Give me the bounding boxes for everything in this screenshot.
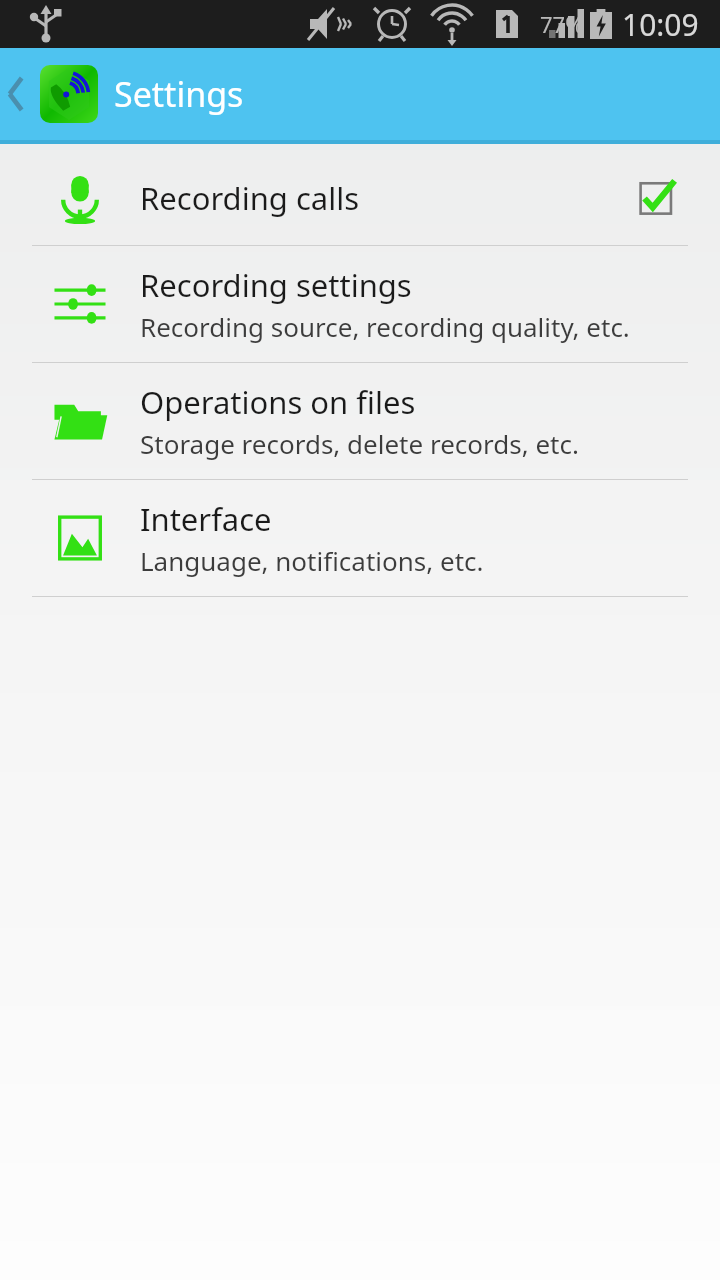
staticText: Operations on files — [140, 381, 416, 423]
staticText: Recording settings — [140, 264, 412, 306]
staticText: Interface — [140, 498, 272, 540]
button[interactable]: Navigate up — [0, 55, 100, 133]
staticText: Settings — [114, 71, 244, 117]
staticText: Recording source, recording quality, etc… — [140, 309, 630, 344]
button[interactable]: Recording calls — [0, 151, 720, 245]
button[interactable]: Operations on files — [0, 363, 720, 479]
staticText: 77% — [540, 9, 584, 39]
button[interactable]: Recording calls toggle — [630, 169, 688, 227]
staticText: Recording calls — [140, 177, 360, 219]
other: Back — [8, 71, 30, 117]
staticText: Language, notifications, etc. — [140, 543, 484, 578]
staticText: 10:09 — [622, 4, 699, 45]
button[interactable]: Recording settings — [0, 246, 720, 362]
button[interactable]: Interface — [0, 480, 720, 596]
staticText: Storage records, delete records, etc. — [140, 426, 579, 461]
